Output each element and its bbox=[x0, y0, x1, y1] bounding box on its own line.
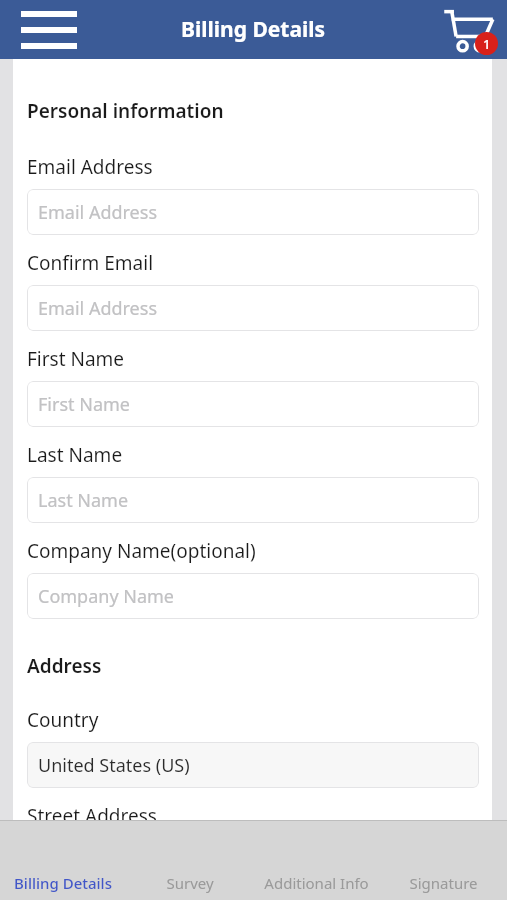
button[interactable]: Open navigation menu bbox=[14, 4, 84, 56]
button[interactable]: United States (US) bbox=[27, 742, 479, 788]
staticText: Country bbox=[27, 707, 99, 733]
staticText: Email Address bbox=[38, 296, 158, 321]
button[interactable]: Shopping cart, 1 item bbox=[437, 0, 499, 59]
staticText: Confirm Email bbox=[27, 250, 154, 276]
button[interactable]: First Name bbox=[27, 381, 479, 427]
staticText: Address bbox=[27, 653, 102, 679]
staticText: Last Name bbox=[27, 442, 123, 468]
button[interactable]: Additional Info bbox=[253, 868, 380, 898]
button[interactable]: Survey bbox=[126, 868, 253, 898]
button[interactable]: Email Address bbox=[27, 285, 479, 331]
staticText: Additional Info bbox=[264, 873, 369, 893]
staticText: Company Name(optional) bbox=[27, 538, 256, 564]
staticText: Billing Details bbox=[181, 15, 326, 44]
staticText: 1 bbox=[483, 35, 491, 53]
button[interactable]: Signature bbox=[380, 868, 507, 898]
staticText: Street Address bbox=[27, 803, 157, 820]
staticText: Email Address bbox=[27, 154, 153, 180]
staticText: First Name bbox=[27, 346, 125, 372]
button[interactable]: Last Name bbox=[27, 477, 479, 523]
button[interactable]: Email Address bbox=[27, 189, 479, 235]
staticText: First Name bbox=[38, 392, 130, 417]
staticText: Survey bbox=[166, 873, 214, 893]
staticText: Company Name bbox=[38, 584, 175, 609]
staticText: Email Address bbox=[38, 200, 158, 225]
button[interactable]: Company Name bbox=[27, 573, 479, 619]
staticText: United States (US) bbox=[38, 753, 190, 778]
staticText: Billing Details bbox=[14, 873, 112, 893]
button[interactable]: Billing Details bbox=[0, 868, 126, 898]
staticText: Signature bbox=[409, 873, 478, 893]
staticText: Personal information bbox=[27, 98, 224, 124]
staticText: Last Name bbox=[38, 488, 129, 513]
